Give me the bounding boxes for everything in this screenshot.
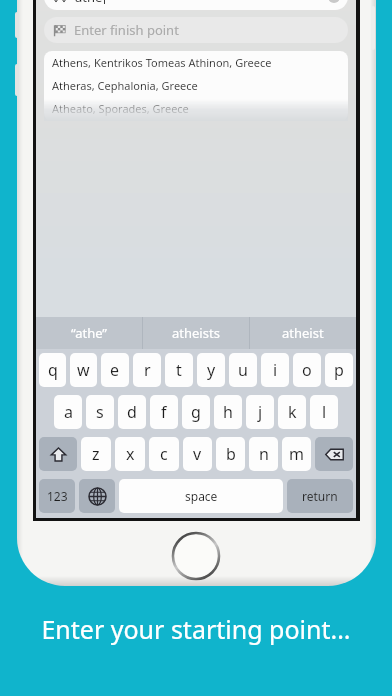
button[interactable]: Shift bbox=[39, 437, 77, 471]
button[interactable]: h bbox=[214, 395, 242, 429]
staticText: d bbox=[127, 401, 137, 423]
staticText: k bbox=[288, 401, 297, 423]
staticText: t bbox=[176, 359, 182, 381]
button[interactable]: atheist bbox=[250, 317, 356, 349]
button[interactable]: e bbox=[101, 353, 129, 387]
button[interactable]: q bbox=[39, 353, 66, 387]
button[interactable]: athe bbox=[44, 0, 348, 10]
staticText: m bbox=[289, 443, 304, 465]
staticText: l bbox=[322, 401, 327, 423]
staticText: b bbox=[226, 443, 236, 465]
button[interactable]: b bbox=[216, 437, 245, 471]
staticText: athe bbox=[75, 0, 103, 6]
button[interactable]: a bbox=[54, 395, 82, 429]
staticText: “athe” bbox=[71, 324, 108, 342]
staticText: x bbox=[126, 443, 135, 465]
staticText: p bbox=[334, 359, 344, 381]
button[interactable]: z bbox=[81, 437, 111, 471]
button[interactable]: Switch keyboard bbox=[79, 479, 115, 513]
staticText: c bbox=[160, 443, 168, 465]
button[interactable]: t bbox=[165, 353, 193, 387]
staticText: q bbox=[48, 359, 58, 381]
button[interactable]: n bbox=[249, 437, 278, 471]
button[interactable]: p bbox=[325, 353, 353, 387]
staticText: Enter finish point bbox=[74, 21, 179, 39]
button[interactable]: r bbox=[133, 353, 161, 387]
button[interactable]: g bbox=[182, 395, 210, 429]
button[interactable]: i bbox=[261, 353, 289, 387]
staticText: atheists bbox=[172, 324, 220, 342]
button[interactable]: j bbox=[246, 395, 274, 429]
staticText: s bbox=[96, 401, 104, 423]
button[interactable]: space bbox=[119, 479, 283, 513]
staticText: g bbox=[191, 401, 201, 423]
button[interactable]: Clear text bbox=[324, 0, 344, 7]
staticText: Atheras, Cephalonia, Greece bbox=[52, 78, 198, 93]
button[interactable]: Home bbox=[171, 531, 221, 581]
staticText: w bbox=[77, 359, 90, 381]
button[interactable]: l bbox=[310, 395, 338, 429]
staticText: return bbox=[302, 488, 338, 504]
button[interactable]: atheists bbox=[143, 317, 249, 349]
button[interactable]: w bbox=[70, 353, 97, 387]
button[interactable]: return bbox=[287, 479, 353, 513]
button[interactable]: u bbox=[229, 353, 257, 387]
button[interactable]: Atheato, Sporades, Greece bbox=[44, 97, 348, 120]
button[interactable]: c bbox=[149, 437, 179, 471]
staticText: atheist bbox=[282, 324, 324, 342]
staticText: n bbox=[259, 443, 269, 465]
staticText: Athens, Kentrikos Tomeas Athinon, Greece bbox=[52, 55, 272, 70]
staticText: u bbox=[238, 359, 248, 381]
staticText: i bbox=[273, 359, 278, 381]
staticText: h bbox=[223, 401, 233, 423]
staticText: Enter your starting point... bbox=[0, 612, 392, 646]
button[interactable]: “athe” bbox=[36, 317, 142, 349]
staticText: e bbox=[110, 359, 120, 381]
button[interactable]: x bbox=[115, 437, 145, 471]
button[interactable]: o bbox=[293, 353, 321, 387]
button[interactable]: m bbox=[282, 437, 311, 471]
button[interactable]: Enter finish point bbox=[44, 17, 348, 43]
button[interactable]: s bbox=[86, 395, 114, 429]
staticText: j bbox=[258, 401, 263, 423]
staticText: o bbox=[302, 359, 312, 381]
button[interactable]: v bbox=[183, 437, 212, 471]
button[interactable]: y bbox=[197, 353, 225, 387]
button[interactable]: d bbox=[118, 395, 146, 429]
button[interactable]: Athens, Kentrikos Tomeas Athinon, Greece bbox=[44, 51, 348, 74]
staticText: Atheato, Sporades, Greece bbox=[52, 101, 189, 116]
staticText: a bbox=[64, 401, 73, 423]
staticText: z bbox=[92, 443, 100, 465]
staticText: v bbox=[193, 443, 202, 465]
staticText: y bbox=[207, 359, 216, 381]
button[interactable]: k bbox=[278, 395, 306, 429]
button[interactable]: Atheras, Cephalonia, Greece bbox=[44, 74, 348, 97]
staticText: space bbox=[185, 488, 218, 504]
staticText: f bbox=[161, 401, 167, 423]
button[interactable]: f bbox=[150, 395, 178, 429]
staticText: 123 bbox=[47, 488, 68, 504]
staticText: r bbox=[144, 359, 151, 381]
button[interactable]: Backspace bbox=[315, 437, 353, 471]
button[interactable]: 123 bbox=[39, 479, 75, 513]
